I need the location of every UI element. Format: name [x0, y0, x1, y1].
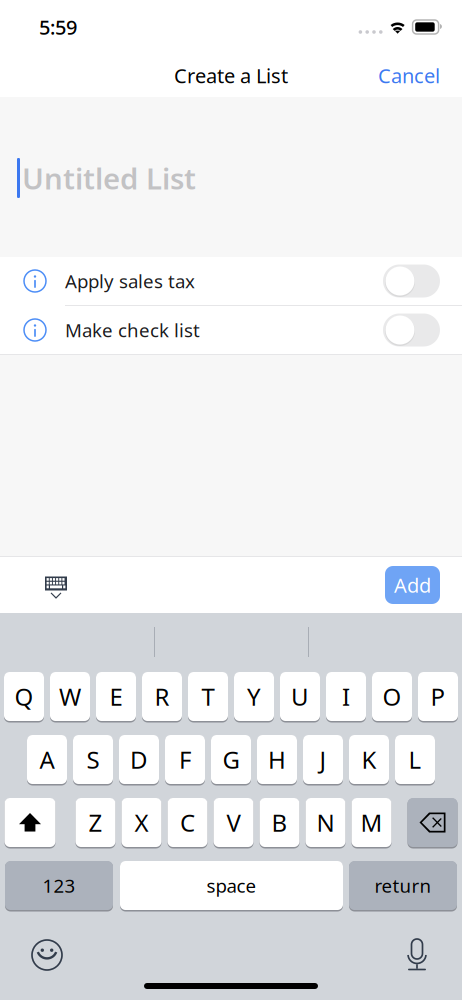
button[interactable]: Y [234, 671, 274, 722]
button[interactable]: W [50, 671, 90, 722]
button[interactable]: N [305, 797, 345, 848]
staticText: W [59, 681, 81, 712]
button[interactable]: More info about Apply sales tax [23, 257, 65, 305]
button[interactable]: Shift [4, 797, 55, 848]
staticText: space [206, 873, 256, 898]
button[interactable]: Cancel [362, 52, 462, 99]
staticText: M [360, 807, 382, 838]
staticText: H [268, 744, 286, 775]
button[interactable]: Emoji [25, 935, 69, 975]
button[interactable]: K [349, 734, 389, 785]
staticText: C [180, 807, 195, 838]
staticText: S [86, 744, 99, 775]
button[interactable]: E [96, 671, 136, 722]
staticText: X [134, 807, 148, 838]
staticText: return [374, 873, 431, 898]
button[interactable]: S [73, 734, 113, 785]
button[interactable]: Hide keyboard [36, 563, 76, 607]
staticText: I [342, 681, 350, 712]
staticText: 123 [42, 873, 75, 898]
staticText: O [382, 681, 401, 712]
staticText: G [222, 744, 239, 775]
staticText: Make check list [65, 318, 200, 342]
button[interactable]: Dictation [395, 935, 439, 975]
button[interactable]: L [395, 734, 435, 785]
staticText: L [408, 744, 421, 775]
staticText: F [179, 744, 191, 775]
button[interactable]: 123 [5, 860, 113, 911]
button[interactable]: D [119, 734, 159, 785]
button[interactable]: R [142, 671, 182, 722]
button[interactable]: F [165, 734, 205, 785]
button[interactable]: J [303, 734, 343, 785]
staticText: T [201, 681, 214, 712]
button[interactable]: C [167, 797, 207, 848]
staticText: V [226, 807, 240, 838]
button[interactable]: Q [4, 671, 44, 722]
button[interactable]: G [211, 734, 251, 785]
button[interactable]: X [121, 797, 161, 848]
staticText: J [319, 744, 326, 775]
button[interactable]: H [257, 734, 297, 785]
button[interactable]: P [418, 671, 458, 722]
staticText: P [430, 681, 445, 712]
button[interactable]: B [259, 797, 299, 848]
button[interactable]: Z [75, 797, 115, 848]
staticText: Add [394, 572, 431, 598]
button[interactable]: I [326, 671, 366, 722]
staticText: U [291, 681, 309, 712]
staticText: B [271, 807, 287, 838]
button[interactable]: return [349, 860, 457, 911]
staticText: Untitled List [22, 158, 196, 197]
button[interactable]: O [372, 671, 412, 722]
staticText: A [39, 744, 54, 775]
staticText: Cancel [378, 62, 440, 89]
button[interactable]: Apply sales tax [352, 257, 452, 305]
staticText: 5:59 [39, 14, 77, 40]
button[interactable]: Make check list [352, 306, 452, 354]
button[interactable]: T [188, 671, 228, 722]
button[interactable]: A [27, 734, 67, 785]
staticText: Create a List [174, 62, 288, 89]
staticText: R [154, 681, 169, 712]
staticText: K [361, 744, 376, 775]
button[interactable]: space [120, 860, 343, 911]
button[interactable]: M [351, 797, 391, 848]
button[interactable]: Delete [407, 797, 457, 848]
staticText: Apply sales tax [65, 269, 195, 293]
button[interactable]: U [280, 671, 320, 722]
staticText: E [109, 681, 122, 712]
button[interactable]: V [213, 797, 253, 848]
staticText: Q [14, 681, 33, 712]
button[interactable]: Add [385, 566, 440, 604]
staticText: Z [88, 807, 102, 838]
staticText: D [130, 744, 148, 775]
staticText: Y [247, 681, 261, 712]
button[interactable]: More info about Make check list [23, 306, 65, 354]
staticText: N [316, 807, 334, 838]
